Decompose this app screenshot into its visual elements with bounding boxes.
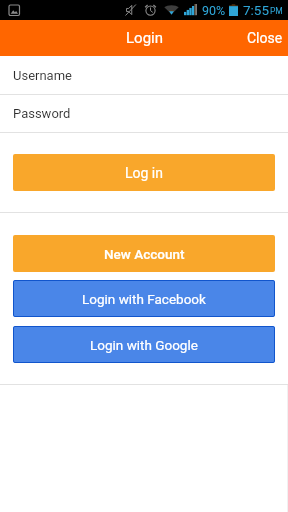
staticText: Login bbox=[126, 29, 163, 47]
button[interactable]: Close bbox=[239, 30, 288, 46]
staticText: Login with Facebook bbox=[82, 291, 206, 307]
staticText: 7:55 bbox=[243, 2, 270, 18]
staticText: Close bbox=[247, 30, 283, 46]
button[interactable]: Password bbox=[0, 95, 288, 132]
staticText: Username bbox=[13, 68, 72, 83]
staticText: Login with Google bbox=[90, 337, 198, 353]
button[interactable]: New Account bbox=[13, 235, 275, 272]
button[interactable]: Login with Google bbox=[13, 326, 275, 363]
button[interactable]: Login with Facebook bbox=[13, 280, 275, 317]
staticText: Log in bbox=[125, 165, 163, 181]
button[interactable]: Username bbox=[0, 56, 288, 94]
button[interactable]: Log in bbox=[13, 154, 275, 191]
staticText: 90% bbox=[202, 3, 226, 18]
staticText: Password bbox=[13, 106, 71, 121]
staticText: New Account bbox=[104, 246, 185, 262]
staticText: PM bbox=[270, 6, 283, 16]
